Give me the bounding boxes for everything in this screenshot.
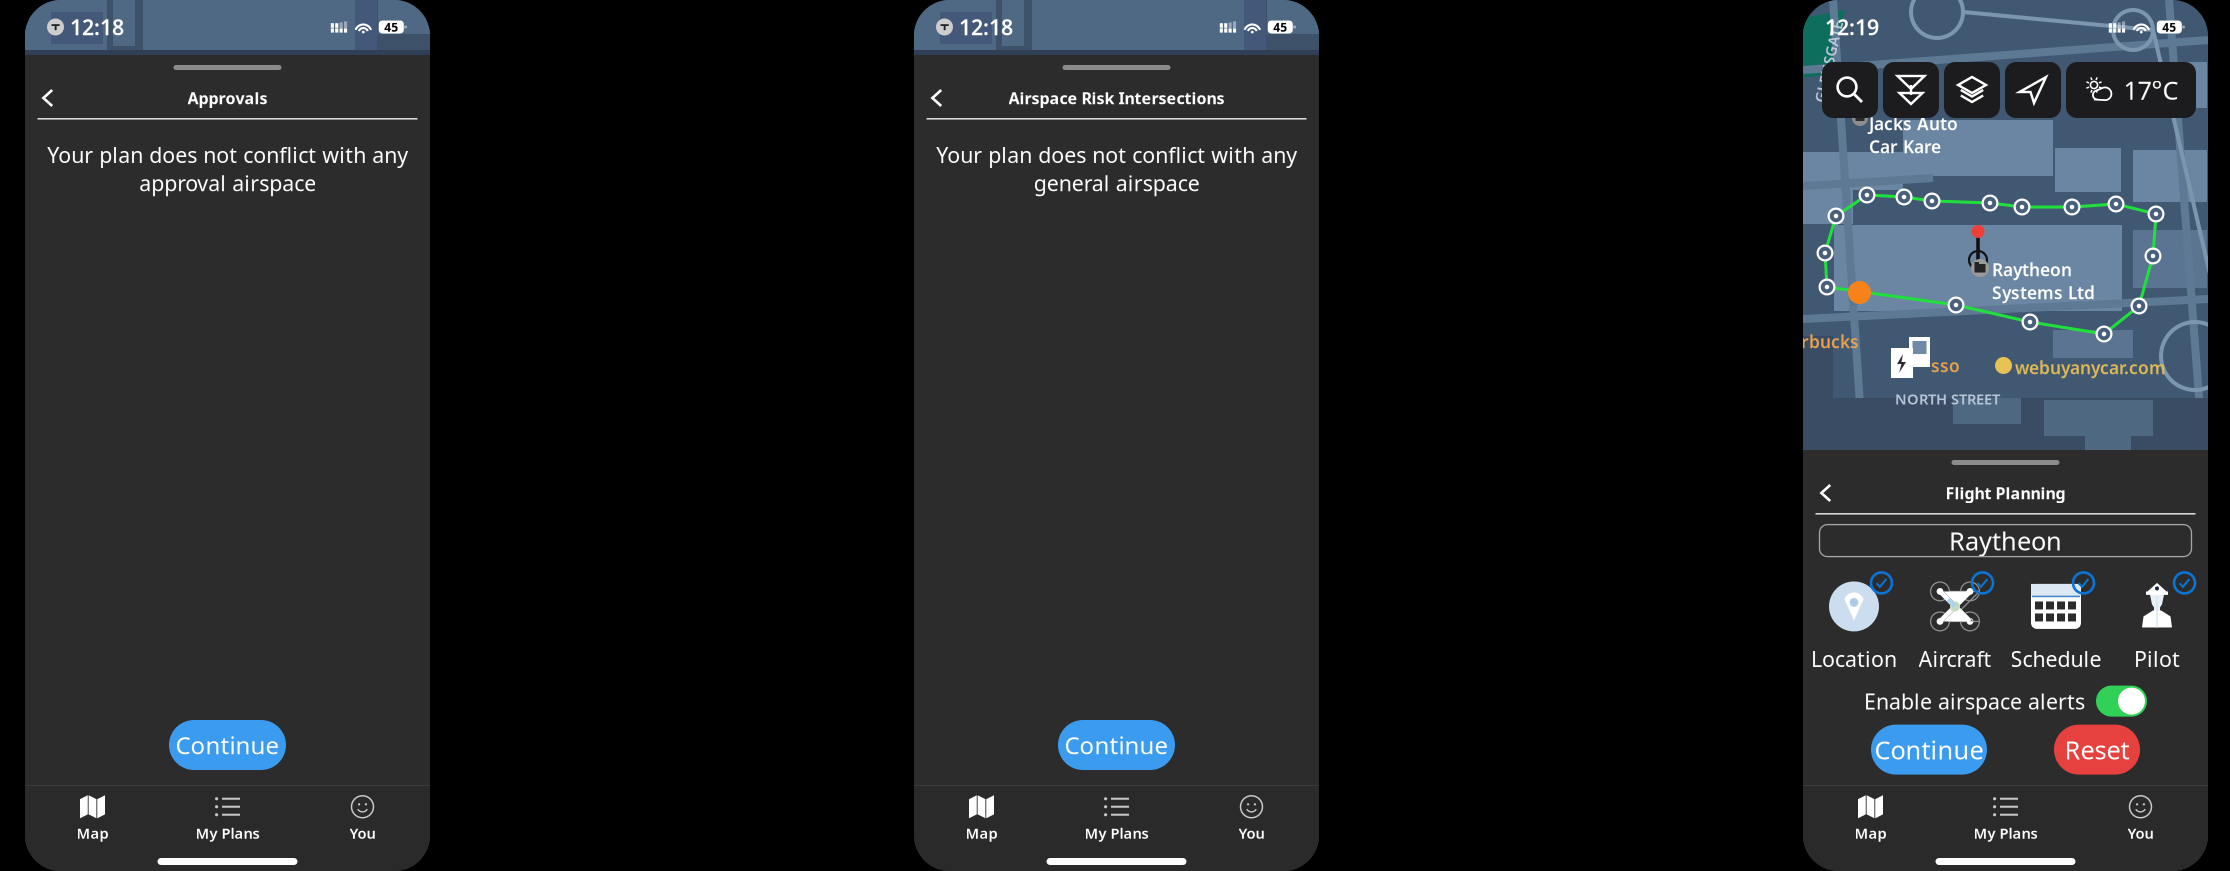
button[interactable]: You <box>295 793 430 845</box>
staticText: Continue <box>1064 729 1168 761</box>
staticText: 45 <box>1273 19 1287 35</box>
button[interactable]: Raytheon <box>1819 525 2191 557</box>
button[interactable]: My Plans <box>1938 793 2073 845</box>
staticText: 12:19 <box>1825 13 1879 41</box>
button[interactable]: My Plans <box>1049 793 1184 845</box>
staticText: NORTH STREET <box>1895 389 2000 408</box>
staticText: Your plan does not conflict with any gen… <box>936 141 1297 197</box>
staticText: Raytheon Systems Ltd <box>1992 258 2095 304</box>
staticText: Location <box>1811 644 1897 673</box>
staticText: webuyanycar.com <box>2015 356 2166 379</box>
button[interactable]: Map <box>914 793 1049 845</box>
button[interactable]: Back <box>25 78 71 118</box>
button[interactable]: Map <box>25 793 160 845</box>
staticText: Map <box>76 823 108 843</box>
button[interactable]: Aircraft <box>1904 579 2005 675</box>
button[interactable]: You <box>1184 793 1319 845</box>
button[interactable]: My Plans <box>160 793 295 845</box>
button[interactable]: Search <box>1822 62 1878 118</box>
staticText: Reset <box>2064 733 2129 766</box>
button[interactable]: Continue <box>1871 725 1987 775</box>
button[interactable]: Back <box>914 78 960 118</box>
staticText: Airspace Risk Intersections <box>1008 87 1224 109</box>
button[interactable]: Map <box>1803 793 1938 845</box>
staticText: My Plans <box>195 823 259 843</box>
button[interactable]: 17°C <box>2066 62 2196 118</box>
staticText: Map <box>965 823 997 843</box>
button[interactable]: Reset <box>2054 725 2140 775</box>
button[interactable]: Schedule <box>2005 579 2106 675</box>
staticText: My Plans <box>1973 823 2037 843</box>
staticText: 45 <box>2162 19 2176 35</box>
staticText: You <box>2127 823 2153 843</box>
staticText: rbucks <box>1801 330 1859 353</box>
staticText: Continue <box>1874 733 1983 766</box>
staticText: Jacks Auto Car Kare <box>1869 112 1958 158</box>
button[interactable]: Set home point <box>1883 62 1939 118</box>
staticText: Your plan does not conflict with any app… <box>47 141 408 197</box>
staticText: sso <box>1931 354 1960 377</box>
staticText: 12:18 <box>70 13 124 41</box>
staticText: GLENSGATE <box>1787 52 1870 71</box>
staticText: 45 <box>384 19 398 35</box>
staticText: 12:18 <box>959 13 1013 41</box>
button[interactable]: Locate me <box>2005 62 2061 118</box>
staticText: Schedule <box>2010 644 2101 673</box>
staticText: Flight Planning <box>1945 482 2065 504</box>
button[interactable]: Location <box>1803 579 1904 675</box>
staticText: Map <box>1854 823 1886 843</box>
button[interactable]: Back <box>1803 473 1849 513</box>
button[interactable]: Map layers <box>1944 62 2000 118</box>
staticText: My Plans <box>1084 823 1148 843</box>
button[interactable]: Continue <box>1058 720 1175 770</box>
staticText: Raytheon <box>1949 524 2062 557</box>
staticText: Approvals <box>187 87 267 109</box>
button[interactable]: You <box>2073 793 2208 845</box>
button[interactable]: Continue <box>169 720 286 770</box>
staticText: You <box>1238 823 1264 843</box>
staticText: 17°C <box>2123 73 2178 107</box>
staticText: Pilot <box>2134 644 2180 673</box>
staticText: You <box>349 823 375 843</box>
button[interactable]: Enable airspace alerts <box>1864 686 2147 717</box>
button[interactable]: Pilot <box>2106 579 2207 675</box>
staticText: Enable airspace alerts <box>1864 687 2085 715</box>
staticText: Aircraft <box>1918 644 1991 673</box>
staticText: Continue <box>175 729 279 761</box>
